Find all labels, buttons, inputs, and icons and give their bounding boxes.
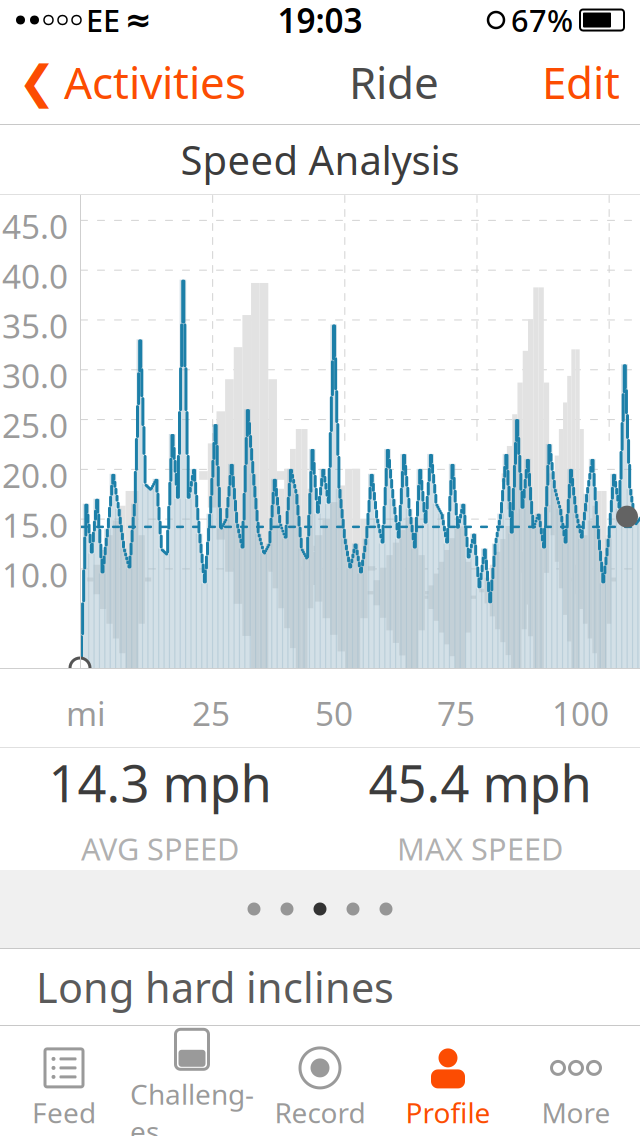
button[interactable]: ❮: [0, 43, 246, 121]
staticText: Speed Analysis: [180, 133, 459, 186]
staticText: 50: [315, 691, 353, 735]
staticText: 25: [192, 691, 230, 735]
staticText: Profile: [405, 1094, 490, 1131]
button[interactable]: More: [512, 1039, 640, 1136]
staticText: 35.0: [2, 303, 68, 348]
staticText: 45.4 mph: [368, 749, 591, 816]
staticText: 30.0: [2, 353, 68, 398]
staticText: 14.3 mph: [48, 749, 271, 816]
staticText: 10.0: [2, 552, 68, 597]
button[interactable]: Feed: [0, 1039, 128, 1136]
staticText: 100: [552, 691, 609, 735]
staticText: Activities: [64, 53, 246, 111]
staticText: 67%: [511, 0, 573, 40]
staticText: Record: [274, 1094, 365, 1131]
staticText: EE: [86, 0, 120, 40]
staticText: MAX SPEED: [397, 828, 563, 869]
staticText: Feed: [32, 1094, 96, 1131]
staticText: ❮: [18, 56, 56, 108]
staticText: 25.0: [2, 403, 68, 447]
button[interactable]: Record: [256, 1039, 384, 1136]
staticText: Edit: [542, 53, 620, 111]
staticText: mi: [66, 691, 106, 735]
button[interactable]: Challenges: [128, 1020, 256, 1136]
staticText: Challenges: [130, 1075, 254, 1136]
staticText: 15.0: [2, 503, 68, 547]
staticText: 40.0: [2, 254, 68, 298]
button[interactable]: Long hard inclines: [0, 949, 640, 1025]
staticText: More: [541, 1094, 610, 1131]
staticText: ≈: [125, 2, 152, 38]
staticText: 20.0: [2, 453, 68, 497]
staticText: Ride: [349, 53, 439, 111]
staticText: AVG SPEED: [81, 828, 239, 869]
staticText: 75: [437, 691, 475, 735]
button[interactable]: Profile: [384, 1039, 512, 1136]
staticText: 19:03: [277, 0, 362, 42]
staticText: Long hard inclines: [36, 960, 394, 1014]
staticText: 45.0: [2, 204, 68, 248]
button[interactable]: Edit: [542, 43, 640, 121]
